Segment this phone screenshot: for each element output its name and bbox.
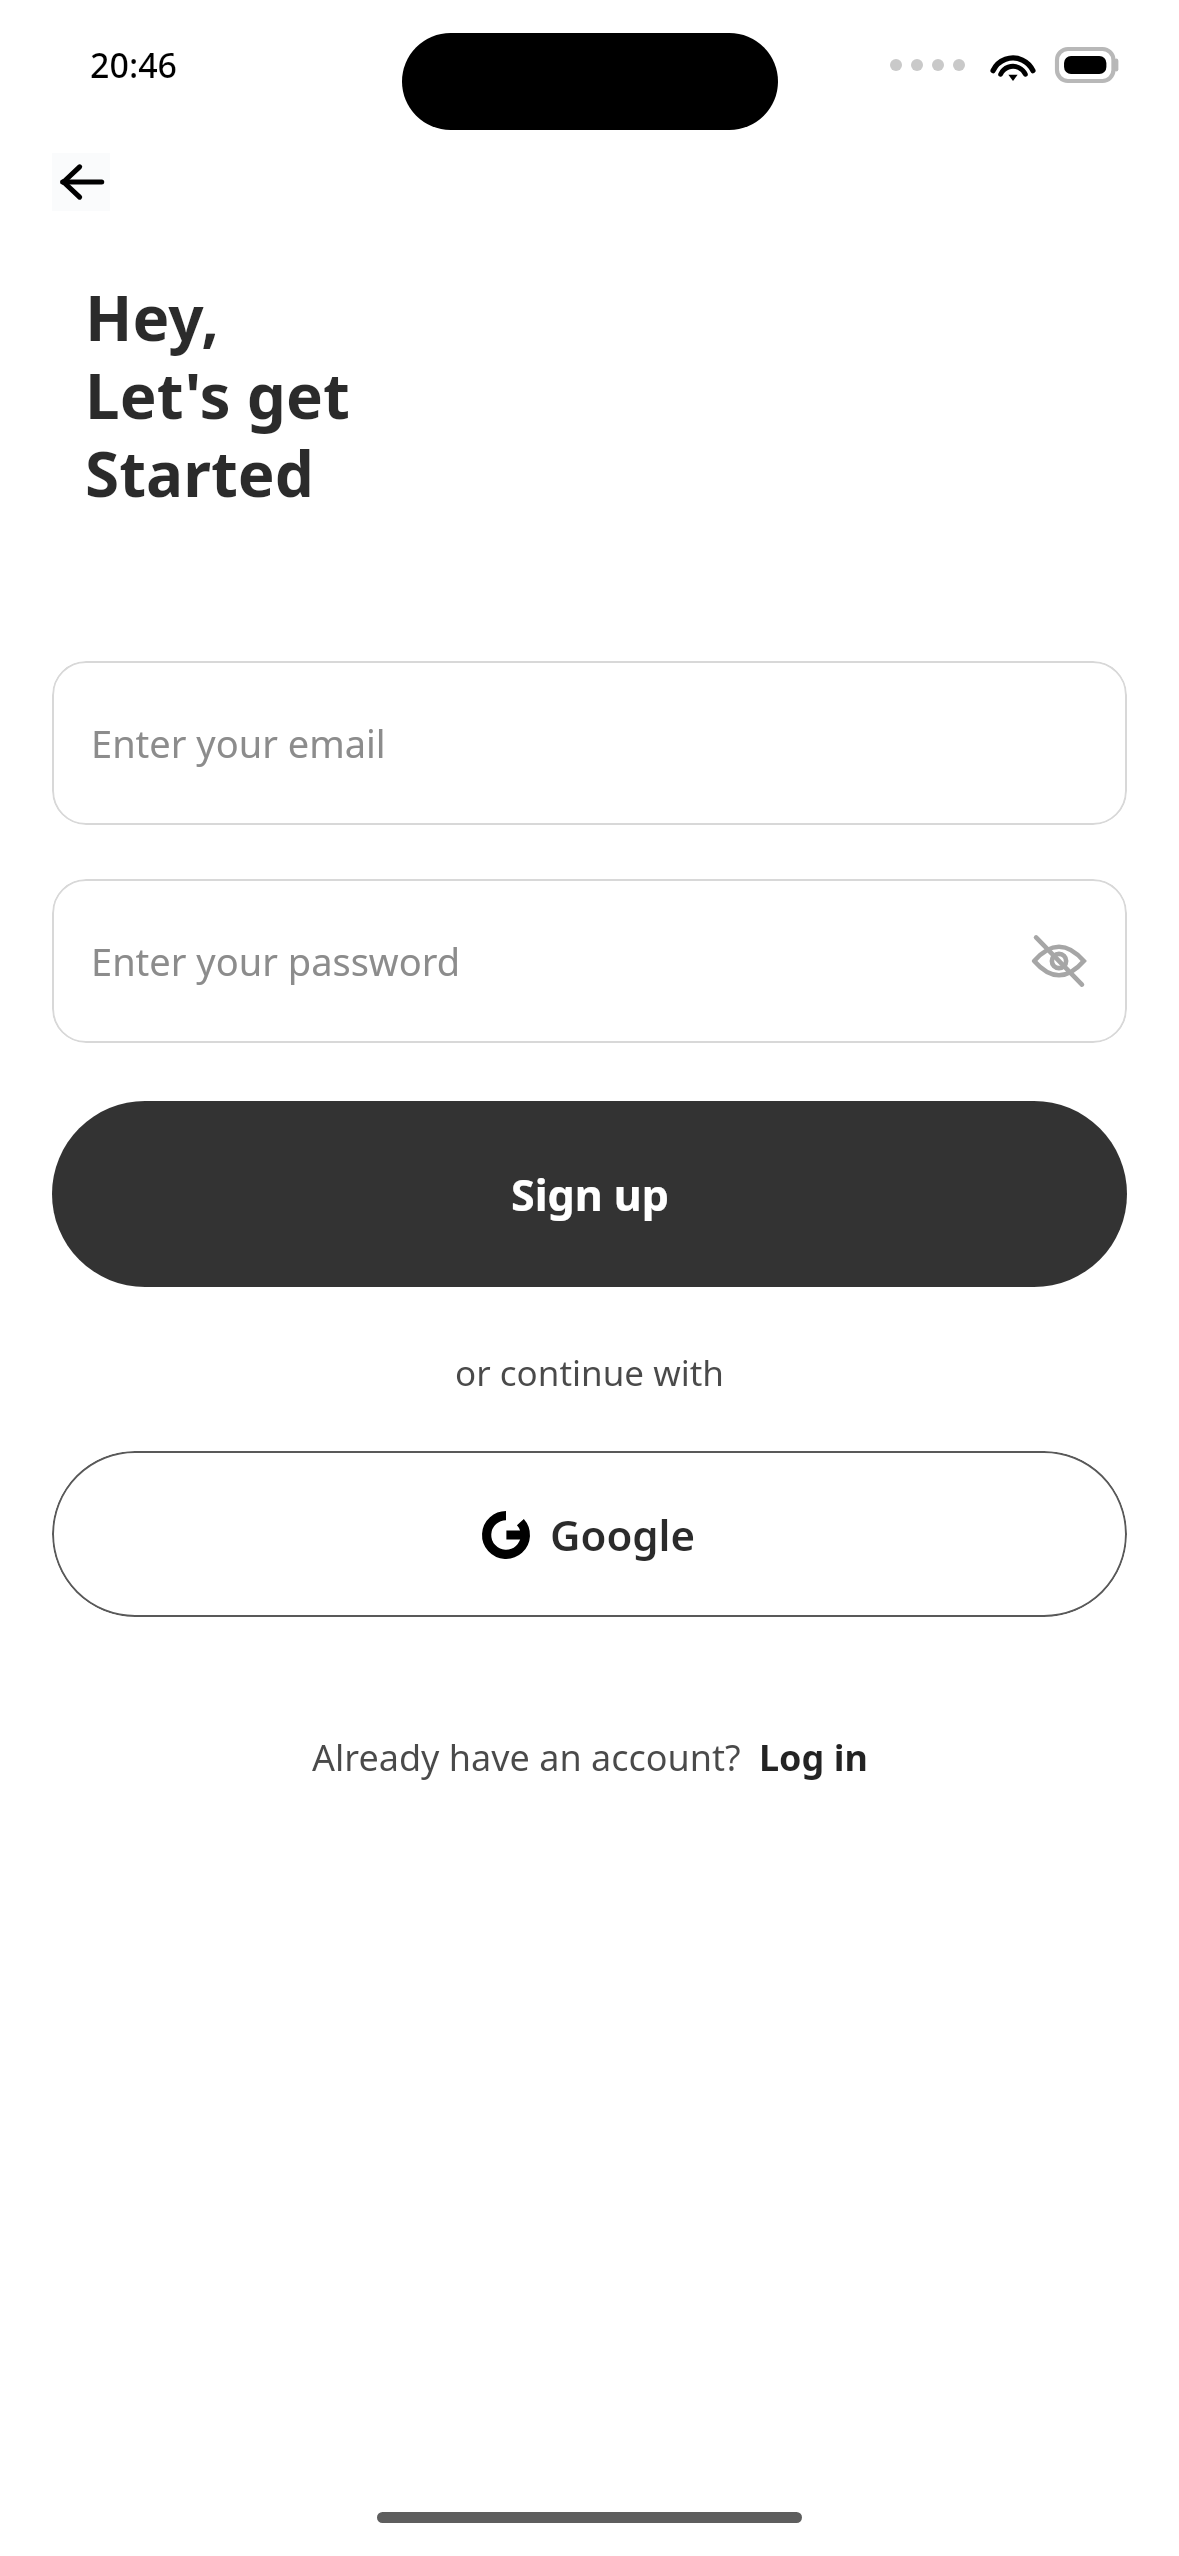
button[interactable]: Enter your email [52, 661, 1127, 825]
button[interactable]: Enter your password [52, 879, 1127, 1043]
button[interactable]: Sign up [52, 1101, 1127, 1287]
button[interactable]: Google [52, 1451, 1127, 1617]
staticText: or continue with [0, 1349, 1179, 1397]
button[interactable]: Log in [759, 1733, 868, 1782]
staticText: Already have an account? [312, 1733, 741, 1782]
button[interactable]: Back [52, 153, 110, 211]
button[interactable]: Show password [1023, 925, 1095, 997]
staticText: Log in [759, 1733, 868, 1782]
staticText: Sign up [511, 1165, 669, 1224]
staticText: Hey, Let's get Started [85, 275, 350, 515]
staticText: Google [550, 1506, 696, 1563]
staticText: Enter your password [91, 935, 461, 987]
staticText: 20:46 [90, 42, 178, 88]
staticText: Enter your email [91, 717, 386, 769]
